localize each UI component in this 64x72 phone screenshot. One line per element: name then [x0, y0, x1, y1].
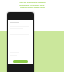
staticText: plants every week now: [20, 6, 45, 9]
staticText: reminder to water your: [19, 4, 45, 7]
button[interactable]: Set reminder: [13, 60, 28, 63]
staticText: Set an automatic weekly: [19, 1, 46, 4]
button[interactable]: [8, 12, 33, 20]
